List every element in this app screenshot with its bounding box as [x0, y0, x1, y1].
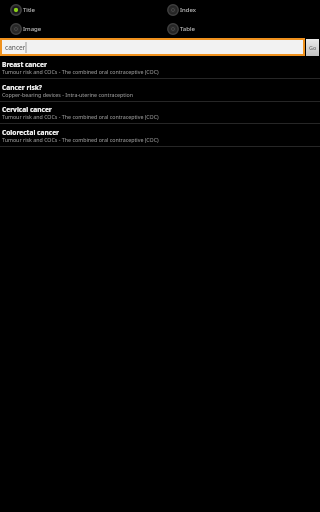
button[interactable]: Cancer risk?: [0, 79, 320, 101]
button[interactable]: Breast cancer: [0, 56, 320, 78]
staticText: Tumour risk and COCs - The combined oral…: [2, 68, 159, 75]
button[interactable]: Cervical cancer: [0, 101, 320, 123]
staticText: Go: [309, 44, 317, 51]
button[interactable]: Title radio button: [0, 0, 157, 19]
button[interactable]: cancer: [2, 40, 303, 54]
button[interactable]: Colorectal cancer: [0, 124, 320, 146]
button[interactable]: Image radio button: [0, 19, 157, 38]
staticText: Breast cancer: [2, 60, 47, 69]
staticText: Tumour risk and COCs - The combined oral…: [2, 113, 159, 120]
staticText: Colorectal cancer: [2, 128, 60, 137]
staticText: Copper-bearing devices - Intra-uterine c…: [2, 91, 133, 98]
button[interactable]: Index radio button: [157, 0, 320, 19]
staticText: Tumour risk and COCs - The combined oral…: [2, 136, 159, 143]
staticText: Title: [23, 6, 35, 14]
staticText: Cancer risk?: [2, 83, 42, 92]
button[interactable]: Table radio button: [157, 19, 320, 38]
staticText: Image: [23, 25, 42, 33]
staticText: Table: [180, 25, 195, 33]
staticText: cancer: [5, 43, 26, 52]
staticText: Cervical cancer: [2, 105, 52, 114]
staticText: Index: [180, 6, 196, 14]
button[interactable]: Go: [306, 39, 319, 56]
